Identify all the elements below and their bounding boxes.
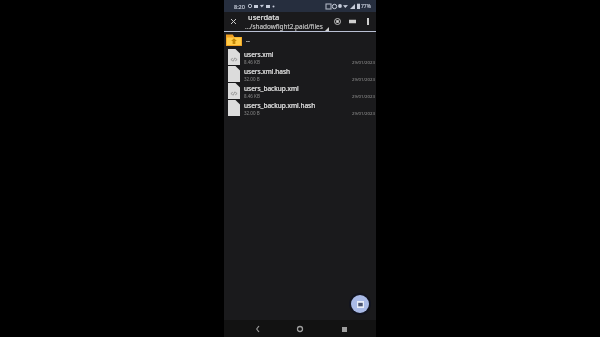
staticText: .. <box>246 35 250 45</box>
staticText: 29/01/2023 <box>352 93 375 99</box>
button[interactable]: Close <box>224 12 242 31</box>
staticText: 8.46 KB <box>244 93 260 99</box>
staticText: 8:20 <box>234 3 245 10</box>
button[interactable]: Save <box>351 295 369 313</box>
staticText: userdata <box>248 12 280 22</box>
staticText: 29/01/2023 <box>352 110 375 116</box>
button[interactable]: users.xml <box>224 47 376 64</box>
button[interactable]: Home <box>292 321 308 337</box>
staticText: 29/01/2023 <box>352 59 375 65</box>
staticText: 77% <box>361 3 371 10</box>
staticText: 29/01/2023 <box>352 76 375 82</box>
staticText: users.xml <box>244 50 274 59</box>
button[interactable]: View mode <box>345 12 360 31</box>
staticText: users_backup.xml.hash <box>244 101 316 110</box>
button[interactable]: .. <box>224 33 376 47</box>
staticText: users.xml.hash <box>244 67 291 76</box>
button[interactable]: users.xml.hash <box>224 64 376 81</box>
staticText: 8.46 KB <box>244 59 260 65</box>
staticText: 32.00 B <box>244 110 260 116</box>
button[interactable]: Recent apps <box>336 321 352 337</box>
button[interactable]: Select all <box>329 12 345 31</box>
staticText: 32.00 B <box>244 76 260 82</box>
button[interactable]: users_backup.xml.hash <box>224 98 376 115</box>
button[interactable]: More options <box>360 12 376 31</box>
button[interactable]: Back <box>249 321 265 337</box>
staticText: users_backup.xml <box>244 84 299 93</box>
staticText: …/shadowfight2.paid/files <box>245 22 323 31</box>
button[interactable]: users_backup.xml <box>224 81 376 98</box>
